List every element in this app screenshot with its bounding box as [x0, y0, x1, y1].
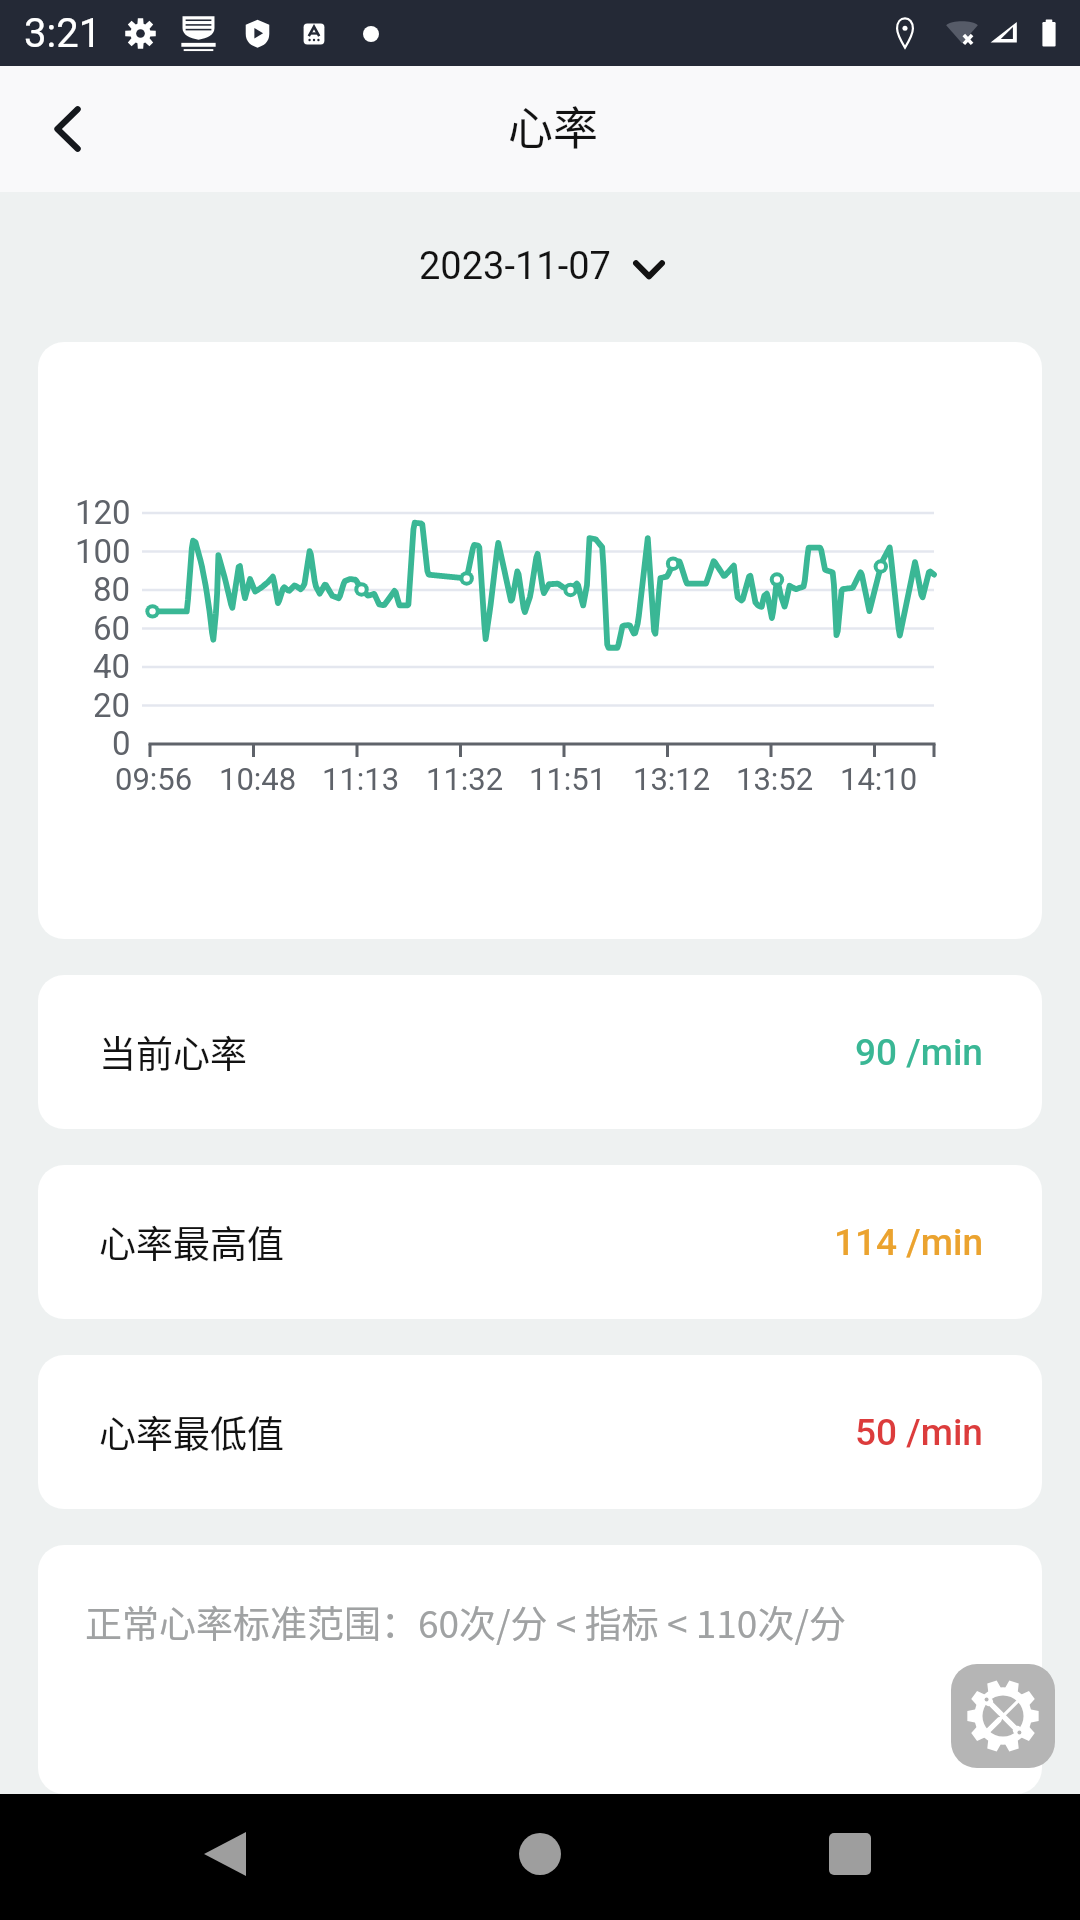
staticText: 11:13: [322, 761, 400, 797]
button[interactable]: Home: [494, 1808, 586, 1900]
staticText: 13:12: [633, 761, 711, 797]
button[interactable]: Back: [179, 1808, 271, 1900]
staticText: 11:32: [426, 761, 504, 797]
staticText: 10:48: [219, 761, 297, 797]
staticText: 11:51: [529, 761, 607, 797]
staticText: 80: [93, 570, 131, 609]
button[interactable]: 心率最低值: [38, 1355, 1042, 1509]
staticText: 114 /min: [834, 1221, 983, 1264]
staticText: 100: [75, 532, 131, 571]
staticText: 当前心率: [99, 1025, 247, 1079]
staticText: 90 /min: [855, 1031, 983, 1074]
button[interactable]: 2023-11-07: [405, 232, 679, 301]
staticText: 心率: [508, 93, 599, 158]
staticText: 正常心率标准范围：60次/分 < 指标 < 110次/分: [85, 1595, 846, 1649]
staticText: 3:21: [24, 10, 102, 57]
staticText: 50 /min: [855, 1411, 983, 1454]
staticText: 09:56: [115, 761, 193, 797]
button[interactable]: Settings: [951, 1664, 1055, 1768]
staticText: 13:52: [736, 761, 814, 797]
staticText: 心率最高值: [99, 1215, 284, 1269]
staticText: 120: [75, 493, 131, 532]
button[interactable]: 当前心率: [38, 975, 1042, 1129]
staticText: 40: [93, 647, 131, 686]
button[interactable]: 心率最高值: [38, 1165, 1042, 1319]
staticText: 0: [112, 724, 131, 763]
staticText: 心率最低值: [99, 1405, 284, 1459]
staticText: 14:10: [840, 761, 918, 797]
button[interactable]: Recent apps: [804, 1808, 896, 1900]
staticText: 20: [93, 686, 131, 725]
staticText: 60: [93, 609, 131, 648]
button[interactable]: Back: [22, 83, 114, 175]
staticText: 2023-11-07: [419, 244, 611, 289]
